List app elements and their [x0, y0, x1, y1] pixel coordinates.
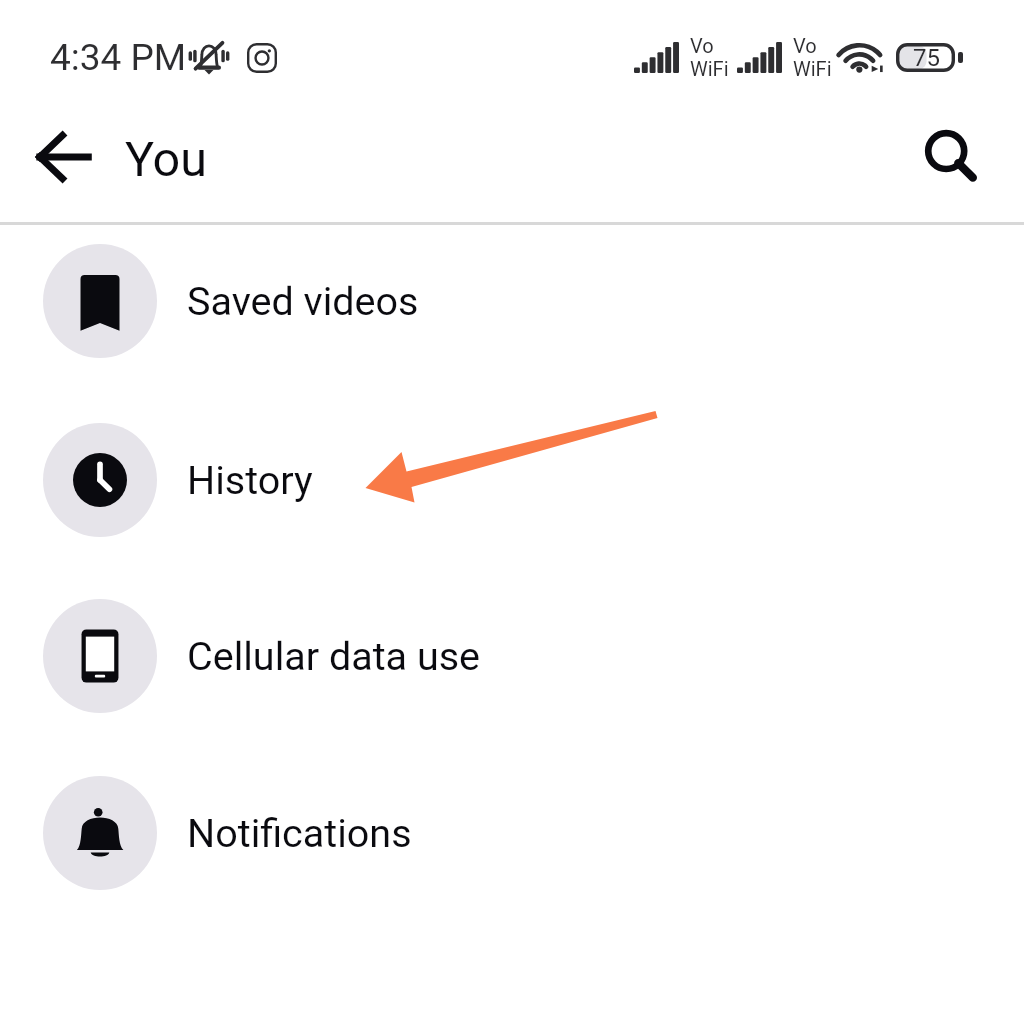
button[interactable]: Back: [22, 117, 102, 197]
staticText: History: [187, 457, 313, 503]
staticText: Saved videos: [187, 278, 419, 324]
staticText: You: [125, 131, 207, 188]
staticText: Notifications: [187, 810, 412, 856]
button[interactable]: Cellular data use: [0, 567, 1024, 744]
staticText: 4:34 PM: [50, 36, 187, 79]
button[interactable]: Notifications: [0, 744, 1024, 921]
button[interactable]: Search: [912, 118, 992, 198]
staticText: Vo: [793, 34, 817, 57]
staticText: 75: [913, 44, 940, 72]
staticText: Cellular data use: [187, 633, 480, 679]
staticText: WiFi: [690, 57, 729, 80]
button[interactable]: History: [0, 391, 1024, 568]
button[interactable]: Saved videos: [0, 212, 1024, 389]
staticText: Vo: [690, 34, 714, 57]
staticText: WiFi: [793, 57, 832, 80]
